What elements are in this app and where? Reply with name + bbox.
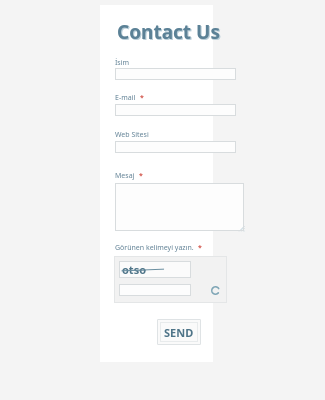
button[interactable] bbox=[115, 104, 236, 116]
staticText: Contact Us bbox=[117, 19, 220, 45]
staticText: otso bbox=[122, 262, 147, 277]
staticText: İsim bbox=[115, 58, 130, 68]
button[interactable]: Refresh captcha bbox=[209, 284, 221, 296]
staticText: Görünen kelimeyi yazın. bbox=[115, 243, 194, 253]
button[interactable]: SEND bbox=[157, 319, 201, 345]
staticText: * bbox=[198, 243, 202, 253]
button[interactable] bbox=[115, 183, 244, 231]
staticText: Mesaj bbox=[115, 171, 135, 181]
button[interactable] bbox=[119, 284, 191, 296]
staticText: Contact Us bbox=[118, 20, 221, 46]
staticText: * bbox=[140, 93, 144, 103]
staticText: E-mail bbox=[115, 93, 136, 103]
staticText: SEND bbox=[164, 325, 194, 340]
staticText: * bbox=[139, 171, 143, 181]
button[interactable] bbox=[115, 141, 236, 153]
button[interactable] bbox=[115, 68, 236, 80]
staticText: Web Sitesi bbox=[115, 130, 149, 140]
